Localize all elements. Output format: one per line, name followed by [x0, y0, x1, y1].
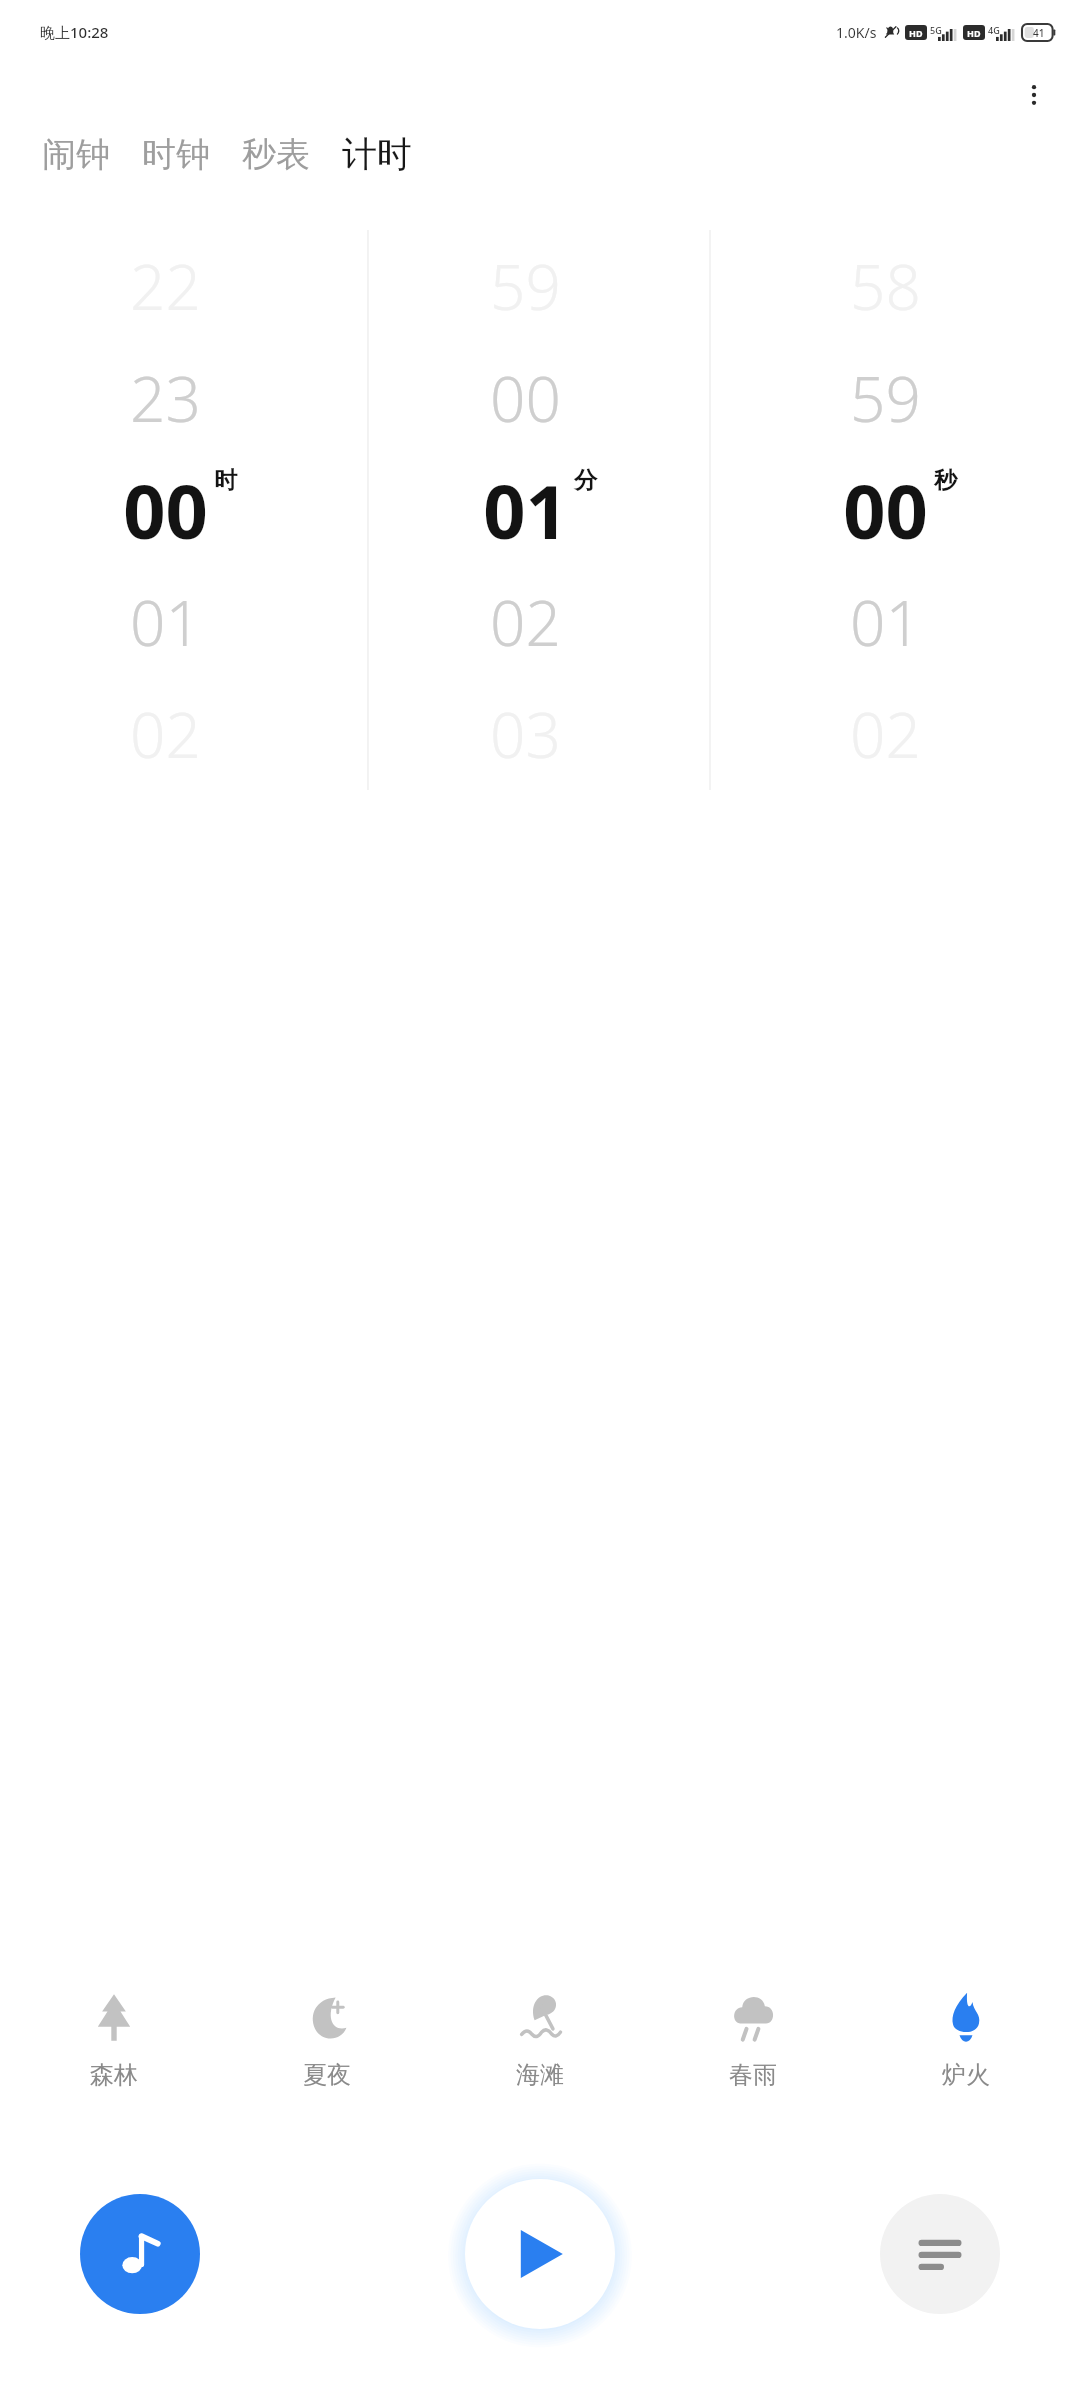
staticText: 02: [130, 692, 201, 776]
staticText: 5G: [930, 24, 942, 36]
staticText: 02: [490, 580, 561, 664]
button[interactable]: 夏夜: [220, 1984, 433, 2096]
staticText: 01: [130, 580, 201, 664]
staticText: 分: [574, 466, 597, 495]
staticText: 00: [490, 356, 561, 440]
button[interactable]: 秒表: [234, 127, 318, 182]
staticText: 22: [130, 244, 201, 328]
staticText: HD: [967, 27, 981, 39]
staticText: 00: [843, 460, 928, 561]
button[interactable]: Ringtone: [80, 2194, 200, 2314]
button[interactable]: 炉火: [859, 1984, 1072, 2096]
button[interactable]: 59: [360, 230, 720, 790]
button[interactable]: More options: [1006, 67, 1062, 123]
button[interactable]: 森林: [8, 1984, 220, 2096]
staticText: 计时: [342, 132, 412, 176]
staticText: 闹钟: [42, 133, 110, 176]
button[interactable]: 春雨: [646, 1984, 859, 2096]
button[interactable]: 闹钟: [34, 127, 118, 182]
staticText: 1.0K/s: [836, 23, 877, 42]
staticText: 森林: [90, 2060, 138, 2090]
staticText: 02: [850, 692, 921, 776]
staticText: HD: [909, 27, 923, 39]
staticText: 海滩: [516, 2060, 564, 2090]
staticText: 01: [850, 580, 921, 664]
staticText: 时: [214, 466, 237, 495]
button[interactable]: Presets: [880, 2194, 1000, 2314]
staticText: 58: [850, 244, 921, 328]
staticText: 59: [490, 244, 561, 328]
staticText: 秒表: [242, 133, 310, 176]
staticText: 41: [1033, 26, 1045, 40]
staticText: 59: [850, 356, 921, 440]
staticText: 炉火: [942, 2060, 990, 2090]
staticText: 01: [483, 460, 568, 561]
staticText: 时钟: [142, 133, 210, 176]
staticText: 秒: [934, 466, 957, 495]
button[interactable]: Start: [465, 2179, 615, 2329]
button[interactable]: 海滩: [433, 1984, 646, 2096]
staticText: 23: [130, 356, 201, 440]
staticText: 春雨: [729, 2060, 777, 2090]
staticText: 夏夜: [303, 2060, 351, 2090]
button[interactable]: 22: [0, 230, 360, 790]
button[interactable]: 58: [720, 230, 1080, 790]
staticText: 00: [123, 460, 208, 561]
staticText: 03: [490, 692, 561, 776]
staticText: 晚上10:28: [40, 22, 109, 42]
staticText: 4G: [988, 24, 1000, 36]
button[interactable]: 时钟: [134, 127, 218, 182]
button[interactable]: 计时: [334, 126, 420, 182]
